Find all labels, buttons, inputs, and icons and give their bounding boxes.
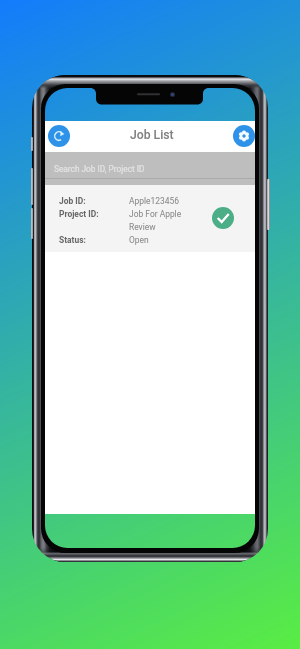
button[interactable]: Settings bbox=[233, 125, 255, 147]
staticText: Job List bbox=[130, 128, 174, 142]
staticText: Apple123456 bbox=[129, 196, 179, 206]
staticText: Project ID: bbox=[59, 209, 99, 219]
staticText: Status: bbox=[59, 235, 86, 245]
staticText: Job For Apple bbox=[129, 209, 182, 219]
staticText: Review bbox=[129, 222, 156, 232]
staticText: Search Job ID, Project ID bbox=[54, 164, 145, 174]
staticText: Job ID: bbox=[59, 196, 86, 206]
button[interactable]: Refresh bbox=[48, 125, 70, 147]
staticText: Open bbox=[129, 235, 149, 245]
button[interactable]: Search Job ID, Project ID bbox=[45, 152, 255, 185]
button[interactable]: Job ID: bbox=[45, 185, 255, 252]
